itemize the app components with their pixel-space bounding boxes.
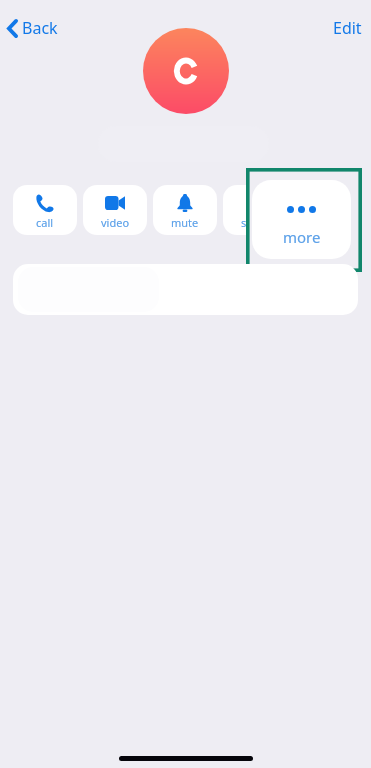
button[interactable]: Back [4, 14, 61, 42]
staticText: mute [171, 215, 199, 230]
staticText: call [36, 215, 54, 230]
button[interactable]: video [83, 185, 147, 235]
button[interactable]: call [13, 185, 77, 235]
staticText: Edit [333, 17, 362, 39]
button[interactable]: share [223, 185, 246, 235]
button[interactable]: more [252, 180, 351, 259]
button[interactable]: Edit [325, 14, 370, 42]
staticText: video [101, 215, 130, 230]
button[interactable] [13, 264, 358, 315]
staticText: Back [22, 17, 58, 39]
staticText: more [283, 227, 321, 247]
button[interactable]: mute [153, 185, 217, 235]
staticText: share [241, 215, 246, 230]
